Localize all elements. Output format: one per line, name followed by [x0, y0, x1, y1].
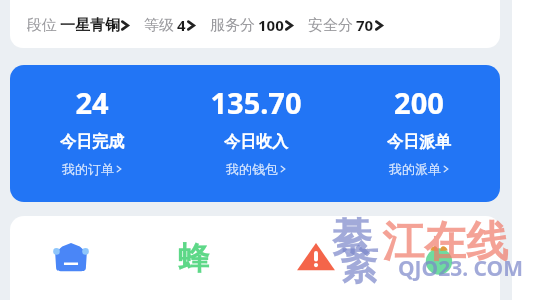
button[interactable]: 安全分	[307, 15, 385, 35]
staticText: 江在线	[382, 216, 508, 269]
button[interactable]: 蜂	[132, 236, 254, 280]
staticText: 今日派单	[387, 132, 451, 152]
button[interactable]: 24	[10, 83, 174, 177]
staticText: 服务分	[210, 16, 255, 35]
staticText: 我的订单	[62, 161, 114, 177]
button[interactable]: 异常提醒	[254, 236, 377, 280]
staticText: 一星青铜	[60, 16, 120, 35]
other: 果园	[417, 236, 461, 280]
other: 会员等级	[49, 236, 93, 280]
button[interactable]: 段位	[26, 16, 131, 35]
staticText: 100	[258, 15, 284, 35]
staticText: 135.70	[210, 83, 302, 122]
button[interactable]: 135.70	[174, 83, 337, 177]
staticText: 70	[356, 15, 374, 35]
button[interactable]: 服务分	[209, 15, 295, 35]
staticText: QJO23. COM	[398, 254, 524, 283]
staticText: 4	[177, 15, 186, 35]
staticText: 段位	[27, 16, 57, 35]
staticText: 200	[394, 83, 444, 122]
other: 异常提醒	[294, 236, 338, 280]
button[interactable]: 等级	[143, 15, 197, 35]
staticText: 蜂	[178, 239, 209, 278]
staticText: 我的派单	[389, 161, 441, 177]
button[interactable]: 会员等级	[10, 236, 132, 280]
staticText: 等级	[144, 16, 174, 35]
staticText: 安全分	[308, 16, 353, 35]
staticText: 今日收入	[224, 132, 288, 152]
staticText: 我的钱包	[226, 161, 278, 177]
staticText: 紊	[340, 242, 378, 290]
button[interactable]: 果园	[377, 236, 500, 280]
button[interactable]: 200	[337, 83, 500, 177]
staticText: 今日完成	[60, 132, 124, 152]
staticText: 綦	[332, 212, 372, 262]
staticText: 24	[75, 83, 109, 122]
